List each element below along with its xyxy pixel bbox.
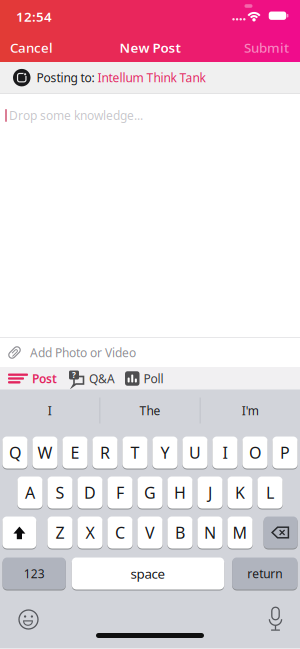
button[interactable]: return: [232, 557, 297, 589]
staticText: Q: [9, 442, 21, 463]
staticText: Z: [55, 522, 64, 543]
staticText: L: [266, 482, 274, 503]
staticText: return: [247, 565, 282, 581]
staticText: H: [174, 482, 186, 503]
staticText: K: [235, 482, 245, 503]
staticText: Intellum Think Tank: [97, 70, 205, 86]
staticText: U: [189, 442, 201, 463]
staticText: A: [25, 482, 35, 503]
staticText: I: [48, 402, 52, 418]
button[interactable]: D: [77, 476, 103, 508]
staticText: D: [84, 482, 96, 503]
staticText: I'm: [242, 402, 259, 418]
button[interactable]: A: [17, 476, 43, 508]
button[interactable]: Q: [2, 436, 28, 468]
staticText: C: [115, 522, 125, 543]
staticText: Add Photo or Video: [30, 344, 136, 360]
button[interactable]: I: [212, 436, 238, 468]
button[interactable]: M: [227, 516, 253, 548]
staticText: B: [175, 522, 185, 543]
button[interactable]: J: [197, 476, 223, 508]
button[interactable]: G: [137, 476, 163, 508]
button[interactable]: L: [257, 476, 283, 508]
staticText: E: [70, 442, 79, 463]
staticText: R: [100, 442, 110, 463]
button[interactable]: Z: [47, 516, 73, 548]
staticText: Q&A: [89, 370, 115, 386]
staticText: O: [249, 442, 261, 463]
button[interactable]: O: [242, 436, 268, 468]
staticText: Poll: [143, 370, 163, 386]
staticText: Posting to:: [36, 70, 94, 86]
staticText: ?: [72, 370, 76, 380]
staticText: I: [222, 442, 227, 463]
staticText: Drop some knowledge...: [9, 107, 143, 123]
staticText: Y: [160, 442, 169, 463]
staticText: Post: [32, 370, 57, 386]
button[interactable]: P: [272, 436, 298, 468]
button[interactable]: S: [47, 476, 73, 508]
staticText: 12:54: [16, 8, 52, 25]
button[interactable]: ?: [69, 370, 115, 386]
staticText: space: [130, 565, 165, 582]
button[interactable]: Delete: [264, 516, 298, 548]
staticText: W: [37, 442, 52, 463]
staticText: P: [280, 442, 290, 463]
button[interactable]: Posting to:: [0, 62, 300, 93]
button[interactable]: F: [107, 476, 133, 508]
button[interactable]: 123: [3, 557, 66, 589]
staticText: F: [116, 482, 124, 503]
staticText: The: [139, 402, 160, 418]
button[interactable]: R: [92, 436, 118, 468]
button[interactable]: Shift: [2, 516, 36, 548]
button[interactable]: H: [167, 476, 193, 508]
staticText: New Post: [119, 39, 180, 56]
button[interactable]: W: [32, 436, 58, 468]
button[interactable]: Y: [152, 436, 178, 468]
button[interactable]: E: [62, 436, 88, 468]
button[interactable]: T: [122, 436, 148, 468]
button[interactable]: X: [77, 516, 103, 548]
button[interactable]: K: [227, 476, 253, 508]
staticText: X: [85, 522, 94, 543]
staticText: 123: [24, 565, 45, 581]
button[interactable]: I'm: [200, 389, 300, 431]
button[interactable]: B: [167, 516, 193, 548]
button[interactable]: Add Photo or Video: [0, 338, 300, 367]
staticText: Submit: [244, 39, 289, 56]
button[interactable]: C: [107, 516, 133, 548]
button[interactable]: The: [100, 389, 200, 431]
staticText: N: [204, 522, 216, 543]
button[interactable]: V: [137, 516, 163, 548]
button[interactable]: Emoji: [18, 609, 38, 629]
staticText: J: [208, 482, 212, 503]
button[interactable]: N: [197, 516, 223, 548]
button[interactable]: I: [0, 389, 100, 431]
staticText: Cancel: [10, 39, 53, 56]
staticText: M: [232, 522, 247, 543]
button[interactable]: Submit: [244, 39, 289, 56]
button[interactable]: Dictation: [265, 608, 285, 630]
button[interactable]: U: [182, 436, 208, 468]
staticText: T: [130, 442, 139, 463]
staticText: G: [144, 482, 156, 503]
button[interactable]: Poll: [125, 370, 163, 386]
staticText: S: [55, 482, 64, 503]
button[interactable]: Cancel: [10, 39, 53, 56]
button[interactable]: Post: [8, 370, 57, 386]
staticText: V: [145, 522, 155, 543]
button[interactable]: space: [72, 557, 224, 589]
